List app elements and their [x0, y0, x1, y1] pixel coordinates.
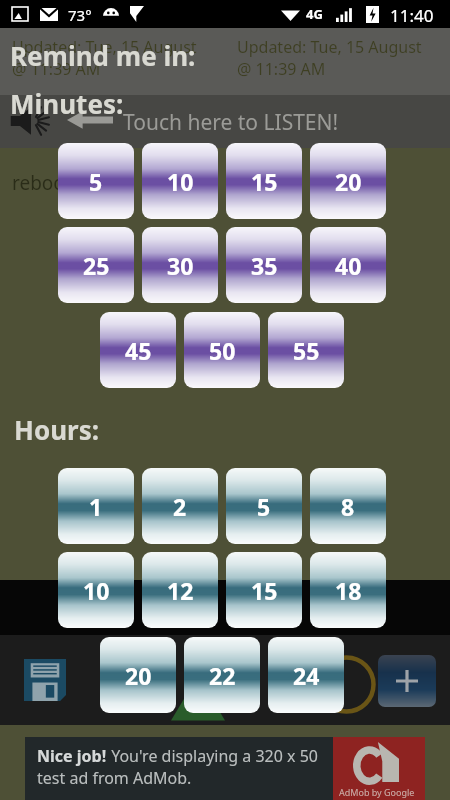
staticText: 73° — [68, 5, 92, 25]
staticText: Updated: Tue, 15 August — [12, 36, 197, 58]
staticText: You're displaying a 320 x 50 — [107, 745, 319, 767]
staticText: Remind me in: — [10, 38, 196, 73]
button[interactable]: 24 — [268, 637, 344, 713]
staticText: 1 — [89, 491, 103, 522]
staticText: 55 — [293, 335, 320, 366]
staticText: 5 — [257, 491, 271, 522]
staticText: Updated: Tue, 15 August — [237, 36, 422, 58]
staticText: 35 — [251, 250, 278, 281]
staticText: reboot s — [12, 170, 96, 196]
button[interactable]: 18 — [310, 552, 386, 628]
staticText: 8 — [341, 491, 355, 522]
button[interactable]: 45 — [100, 312, 176, 388]
button[interactable]: 55 — [268, 312, 344, 388]
button[interactable]: 20 — [100, 637, 176, 713]
staticText: 24 — [293, 660, 320, 691]
staticText: AdMob by Google — [339, 786, 415, 798]
button[interactable]: Touch here to LISTEN! — [0, 95, 450, 148]
staticText: Touch here to LISTEN! — [123, 108, 339, 137]
staticText: 20 — [335, 166, 362, 197]
staticText: @ 11:39 AM — [12, 58, 101, 80]
button[interactable]: 1 — [58, 468, 134, 544]
button[interactable]: 2 — [142, 468, 218, 544]
staticText: 15 — [251, 166, 278, 197]
staticText: 4G — [306, 5, 323, 23]
staticText: 10 — [167, 166, 194, 197]
button[interactable]: 15 — [226, 552, 302, 628]
button[interactable]: 15 — [226, 143, 302, 219]
staticText: test ad from AdMob. — [37, 767, 192, 789]
button[interactable]: 20 — [310, 143, 386, 219]
button[interactable]: 5 — [58, 143, 134, 219]
staticText: 22 — [209, 660, 236, 691]
staticText: 30 — [167, 250, 194, 281]
button[interactable]: 50 — [184, 312, 260, 388]
button[interactable]: Save — [14, 649, 76, 711]
button[interactable]: 8 — [310, 468, 386, 544]
staticText: 25 — [83, 250, 110, 281]
staticText: 20 — [125, 660, 152, 691]
button[interactable]: 12 — [142, 552, 218, 628]
button[interactable]: 40 — [310, 227, 386, 303]
staticText: @ 11:39 AM — [237, 58, 326, 80]
button[interactable]: 35 — [226, 227, 302, 303]
button[interactable]: Add — [378, 655, 436, 707]
staticText: 2 — [173, 491, 187, 522]
staticText: 5 — [89, 166, 103, 197]
staticText: 15 — [251, 575, 278, 606]
button[interactable]: 30 — [142, 227, 218, 303]
staticText: 10 — [83, 575, 110, 606]
staticText: 18 — [335, 575, 362, 606]
staticText: 11:40 — [390, 4, 434, 27]
button[interactable]: 25 — [58, 227, 134, 303]
staticText: Hours: — [14, 412, 100, 447]
button[interactable]: 10 — [58, 552, 134, 628]
staticText: 45 — [125, 335, 152, 366]
button[interactable]: 22 — [184, 637, 260, 713]
button[interactable]: 5 — [226, 468, 302, 544]
staticText: Nice job! — [37, 745, 107, 767]
button[interactable]: 10 — [142, 143, 218, 219]
staticText: 40 — [335, 250, 362, 281]
staticText: 12 — [167, 575, 194, 606]
staticText: 50 — [209, 335, 236, 366]
staticText: Minutes: — [10, 86, 124, 121]
button[interactable]: Nice job! — [25, 737, 425, 800]
